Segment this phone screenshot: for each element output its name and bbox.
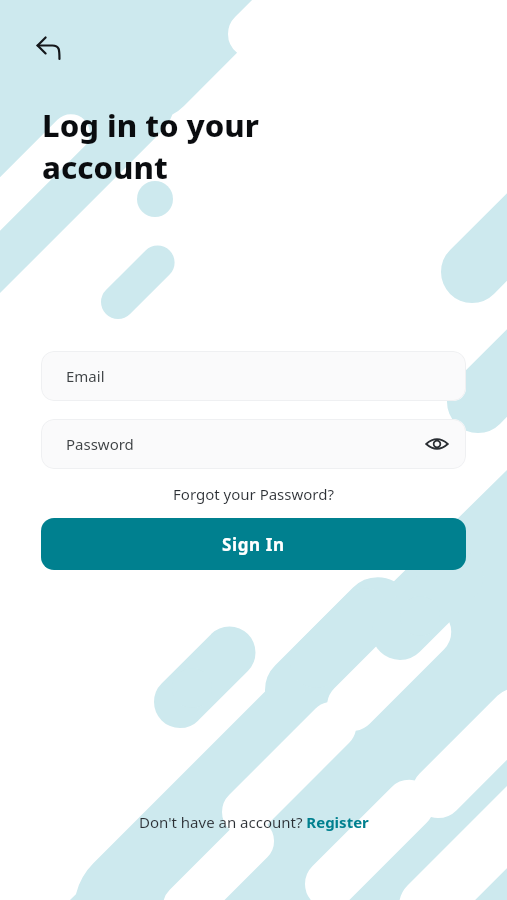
button[interactable]: Password [41, 419, 466, 469]
button[interactable]: Don't have an account? Register [129, 808, 379, 836]
button[interactable]: Back [33, 27, 75, 69]
staticText: Log in to your account [42, 104, 259, 188]
button[interactable]: Show password [420, 427, 454, 461]
button[interactable]: Email [41, 351, 466, 401]
staticText: Sign In [222, 533, 285, 556]
staticText: Email [66, 366, 105, 386]
button[interactable]: Sign In [41, 518, 466, 570]
button[interactable]: Forgot your Password? [41, 478, 466, 510]
staticText: Forgot your Password? [173, 484, 334, 504]
staticText: Don't have an account? Register [139, 812, 369, 832]
staticText: Password [66, 434, 134, 454]
